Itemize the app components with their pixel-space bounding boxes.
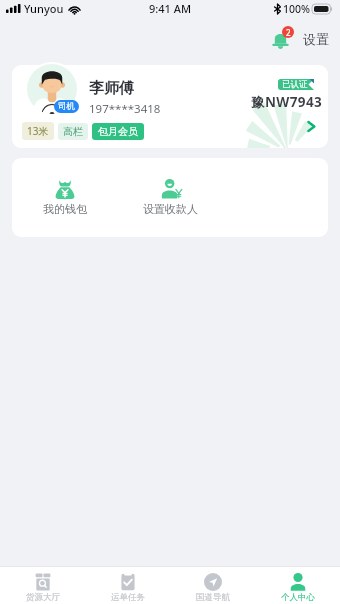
button[interactable]: [12, 65, 328, 148]
staticText: 个人中心: [281, 592, 315, 603]
staticText: 设置: [303, 31, 329, 47]
staticText: 已认证: [282, 79, 308, 89]
staticText: 2: [286, 27, 291, 38]
staticText: 9:41 AM: [149, 1, 192, 16]
staticText: 我的钱包: [43, 202, 87, 216]
staticText: 13米: [27, 124, 49, 138]
staticText: 设置收款人: [143, 202, 198, 216]
staticText: 197****3418: [89, 101, 161, 117]
button[interactable]: 设置: [302, 28, 330, 50]
button[interactable]: 运单任务: [85, 572, 170, 604]
staticText: 高栏: [63, 125, 83, 138]
staticText: 100%: [283, 2, 310, 16]
staticText: 豫NW7943: [251, 93, 323, 111]
staticText: Yunyou: [24, 1, 64, 16]
staticText: 李师傅: [89, 79, 134, 98]
button[interactable]: 我的钱包: [12, 178, 118, 216]
staticText: 包月会员: [98, 125, 138, 138]
button[interactable]: Notifications: [267, 26, 293, 52]
button[interactable]: 货源大厅: [0, 572, 85, 604]
staticText: 国道导航: [196, 592, 230, 603]
button[interactable]: 国道导航: [170, 572, 255, 604]
staticText: 运单任务: [111, 592, 145, 603]
staticText: 司机: [58, 101, 75, 112]
button[interactable]: 个人中心: [255, 572, 340, 604]
staticText: 货源大厅: [26, 592, 60, 603]
button[interactable]: 设置收款人: [118, 178, 223, 216]
